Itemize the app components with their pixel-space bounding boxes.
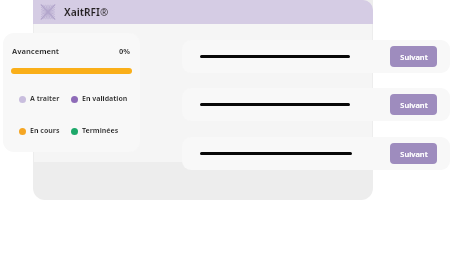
- button[interactable]: Suivant: [182, 88, 450, 121]
- other: Xait logo: [38, 2, 58, 22]
- staticText: Avancement: [12, 46, 60, 56]
- staticText: A traiter: [30, 94, 60, 104]
- button[interactable]: Terminées: [71, 126, 119, 136]
- staticText: Suivant: [400, 100, 428, 110]
- staticText: XaitRFI®: [64, 5, 109, 19]
- staticText: Suivant: [400, 52, 428, 62]
- button[interactable]: A traiter: [19, 94, 69, 104]
- button[interactable]: En cours: [19, 126, 69, 136]
- staticText: En cours: [30, 126, 60, 136]
- staticText: Suivant: [400, 149, 428, 159]
- button[interactable]: Xait logo: [33, 0, 373, 24]
- button[interactable]: Suivant: [390, 46, 437, 67]
- button[interactable]: Suivant: [182, 137, 450, 170]
- staticText: 0%: [119, 46, 131, 56]
- button[interactable]: Avancement: [3, 33, 140, 152]
- staticText: En validation: [82, 94, 128, 104]
- button[interactable]: En validation: [71, 94, 128, 104]
- button[interactable]: Suivant: [390, 94, 437, 115]
- staticText: Terminées: [82, 126, 119, 136]
- button[interactable]: Suivant: [390, 143, 437, 164]
- button[interactable]: Suivant: [182, 40, 450, 73]
